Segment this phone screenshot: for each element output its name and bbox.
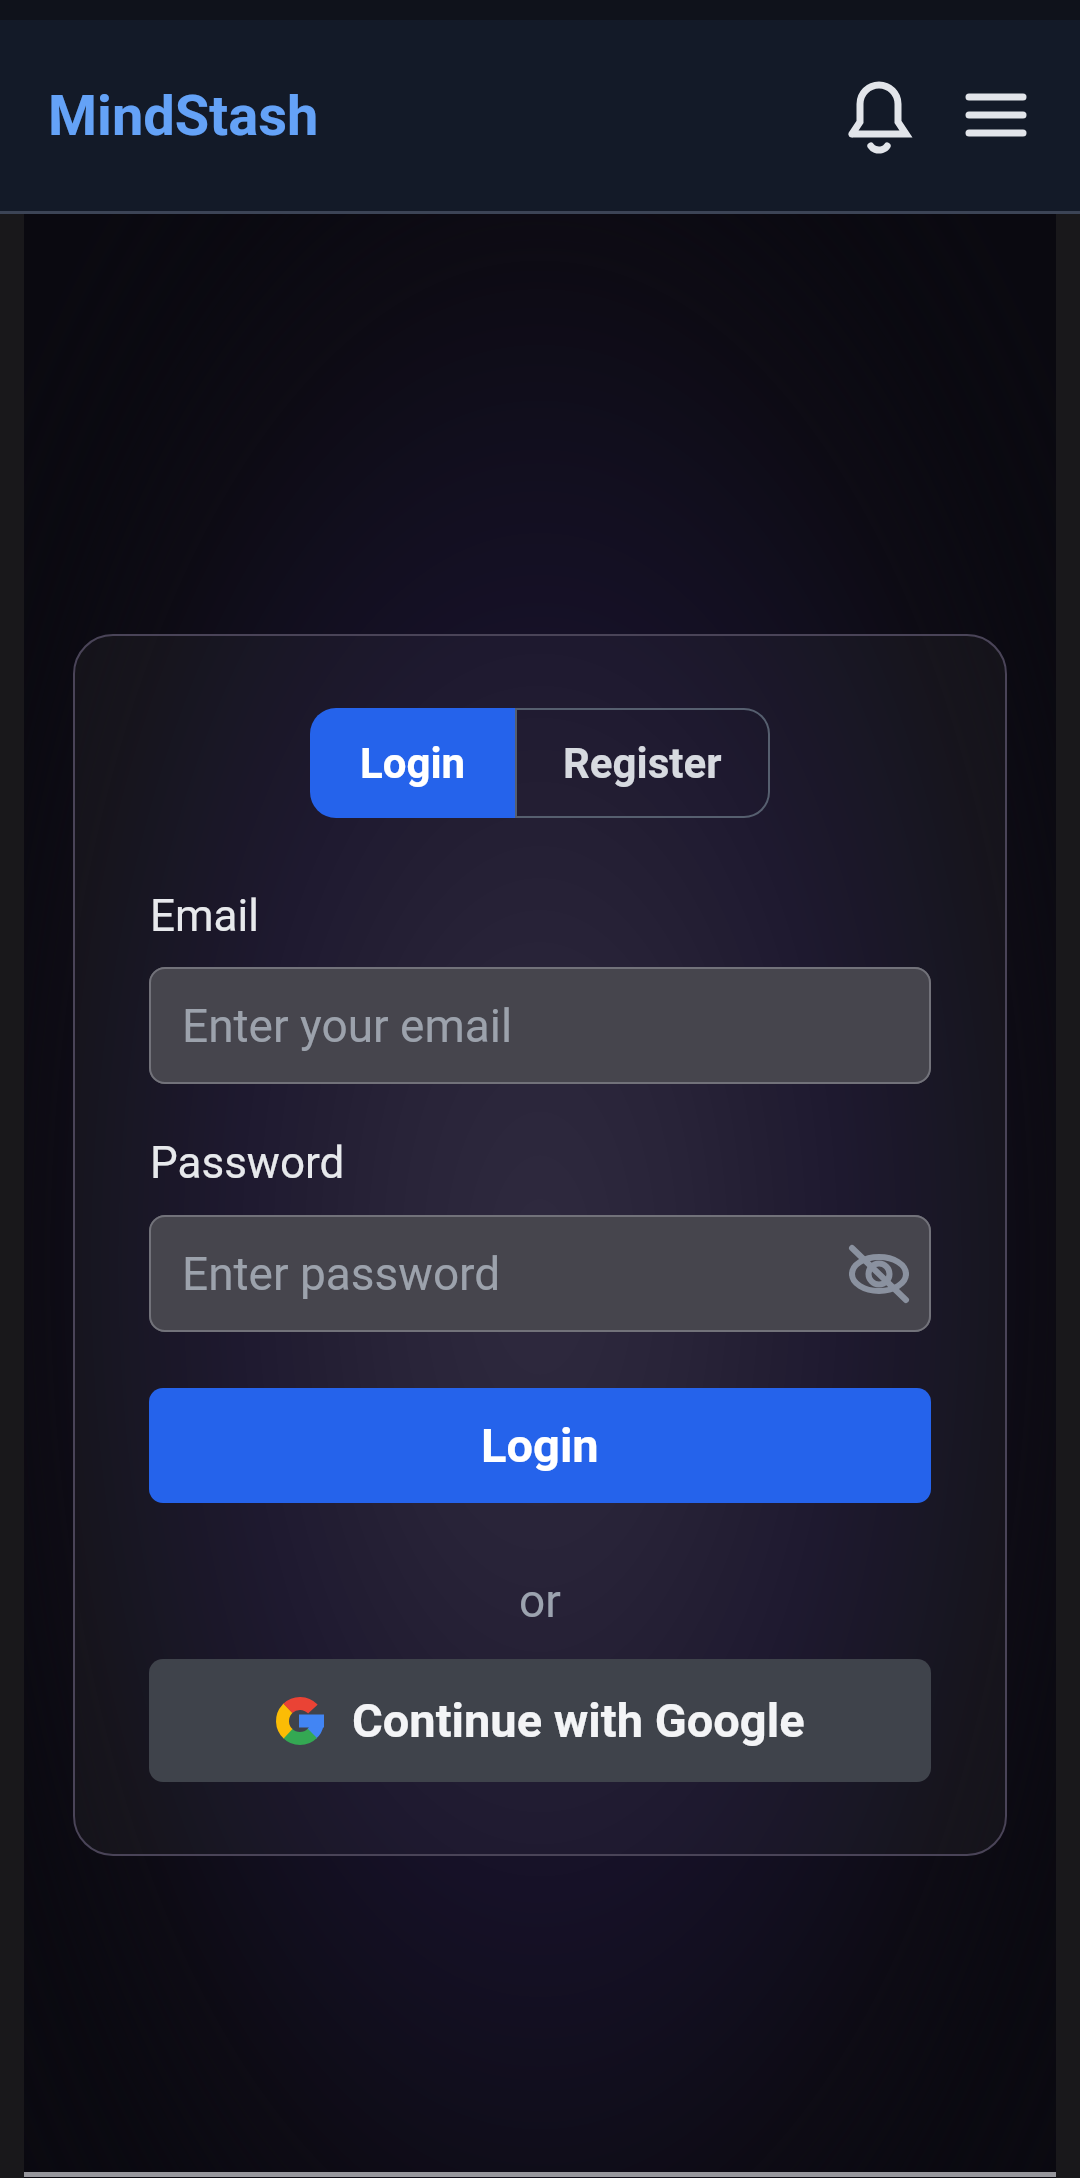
- button[interactable]: Enter password: [149, 1215, 931, 1332]
- staticText: or: [519, 1574, 561, 1628]
- button[interactable]: Enter your email: [149, 967, 931, 1084]
- staticText: Enter password: [182, 1247, 501, 1301]
- button[interactable]: Continue with Google: [149, 1659, 931, 1782]
- button[interactable]: [966, 86, 1026, 146]
- button[interactable]: Register: [515, 708, 770, 818]
- staticText: Enter your email: [182, 999, 513, 1053]
- staticText: Login: [481, 1418, 599, 1473]
- button[interactable]: [849, 86, 909, 146]
- staticText: Login: [360, 739, 466, 788]
- button[interactable]: Login: [310, 708, 515, 818]
- button[interactable]: Login: [149, 1388, 931, 1503]
- staticText: Register: [563, 739, 722, 788]
- staticText: Password: [150, 1137, 345, 1189]
- staticText: MindStash: [48, 83, 319, 149]
- staticText: Continue with Google: [352, 1693, 805, 1748]
- button[interactable]: [851, 1246, 907, 1302]
- staticText: Email: [150, 890, 259, 942]
